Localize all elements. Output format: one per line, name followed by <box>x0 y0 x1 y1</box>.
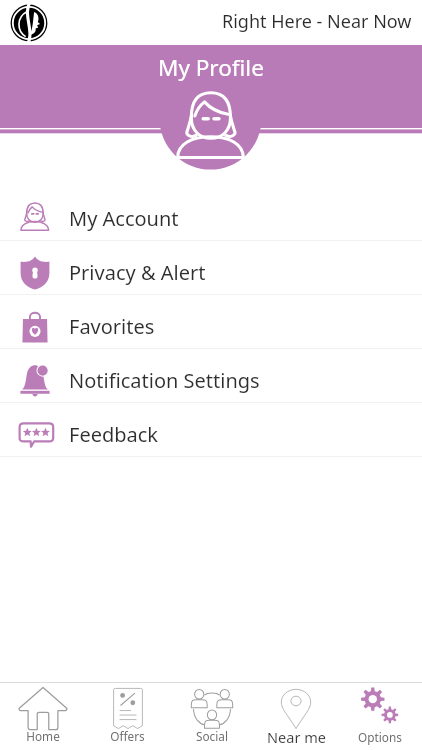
button[interactable]: Home <box>0 683 85 750</box>
staticText: Feedback <box>69 421 159 448</box>
other: Logo <box>9 3 49 43</box>
staticText: My Account <box>69 205 179 232</box>
button[interactable]: Feedback <box>0 403 422 457</box>
button[interactable]: Notification Settings <box>0 349 422 403</box>
staticText: Right Here - Near Now <box>222 9 412 34</box>
button[interactable]: Privacy & Alert <box>0 241 422 295</box>
staticText: Privacy & Alert <box>69 259 206 286</box>
staticText: Social <box>196 728 228 744</box>
button[interactable]: Near me <box>254 683 338 750</box>
staticText: Notification Settings <box>69 367 260 394</box>
button[interactable]: Options <box>338 683 422 750</box>
button[interactable]: My Account <box>0 187 422 241</box>
staticText: Near me <box>267 727 326 747</box>
button[interactable]: Favorites <box>0 295 422 349</box>
staticText: My Profile <box>158 52 264 83</box>
staticText: Home <box>26 728 60 744</box>
button[interactable]: Offers <box>85 683 170 750</box>
staticText: Offers <box>110 728 145 744</box>
staticText: Options <box>358 729 402 745</box>
staticText: Favorites <box>69 313 155 340</box>
button[interactable]: Social <box>170 683 254 750</box>
